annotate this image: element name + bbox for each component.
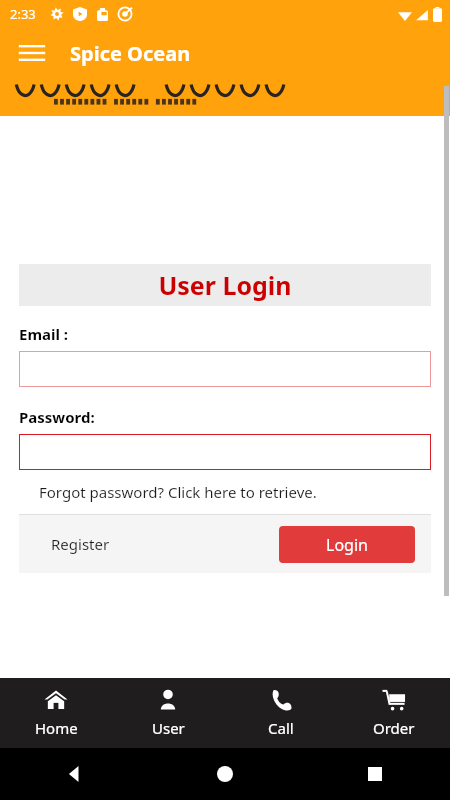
button[interactable]: Call xyxy=(224,678,337,748)
button[interactable]: Home xyxy=(150,748,300,800)
staticText: Email : xyxy=(19,324,69,344)
button[interactable]: Home xyxy=(0,678,112,748)
button[interactable]: Open navigation menu xyxy=(12,33,52,73)
button[interactable]: Forgot password? Click here to retrieve. xyxy=(19,480,431,510)
staticText: Home xyxy=(35,718,78,738)
staticText: User xyxy=(152,718,185,738)
staticText: Spice Ocean xyxy=(70,40,191,67)
staticText: Register xyxy=(51,534,110,554)
button[interactable]: Back xyxy=(0,748,150,800)
staticText: 2:33 xyxy=(10,5,36,23)
button[interactable]: Email input field xyxy=(19,351,431,387)
staticText: Password: xyxy=(19,407,95,427)
button[interactable]: Password input field xyxy=(19,434,431,470)
button[interactable]: Register xyxy=(19,526,126,562)
staticText: Forgot password? Click here to retrieve. xyxy=(39,482,317,502)
staticText: Order xyxy=(373,718,415,738)
button[interactable]: User xyxy=(112,678,224,748)
staticText: Call xyxy=(268,718,294,738)
button[interactable]: Login xyxy=(279,526,415,563)
button[interactable]: Order xyxy=(337,678,450,748)
button[interactable]: Recent apps xyxy=(300,748,450,800)
staticText: User Login xyxy=(158,268,292,302)
staticText: Login xyxy=(326,534,368,556)
